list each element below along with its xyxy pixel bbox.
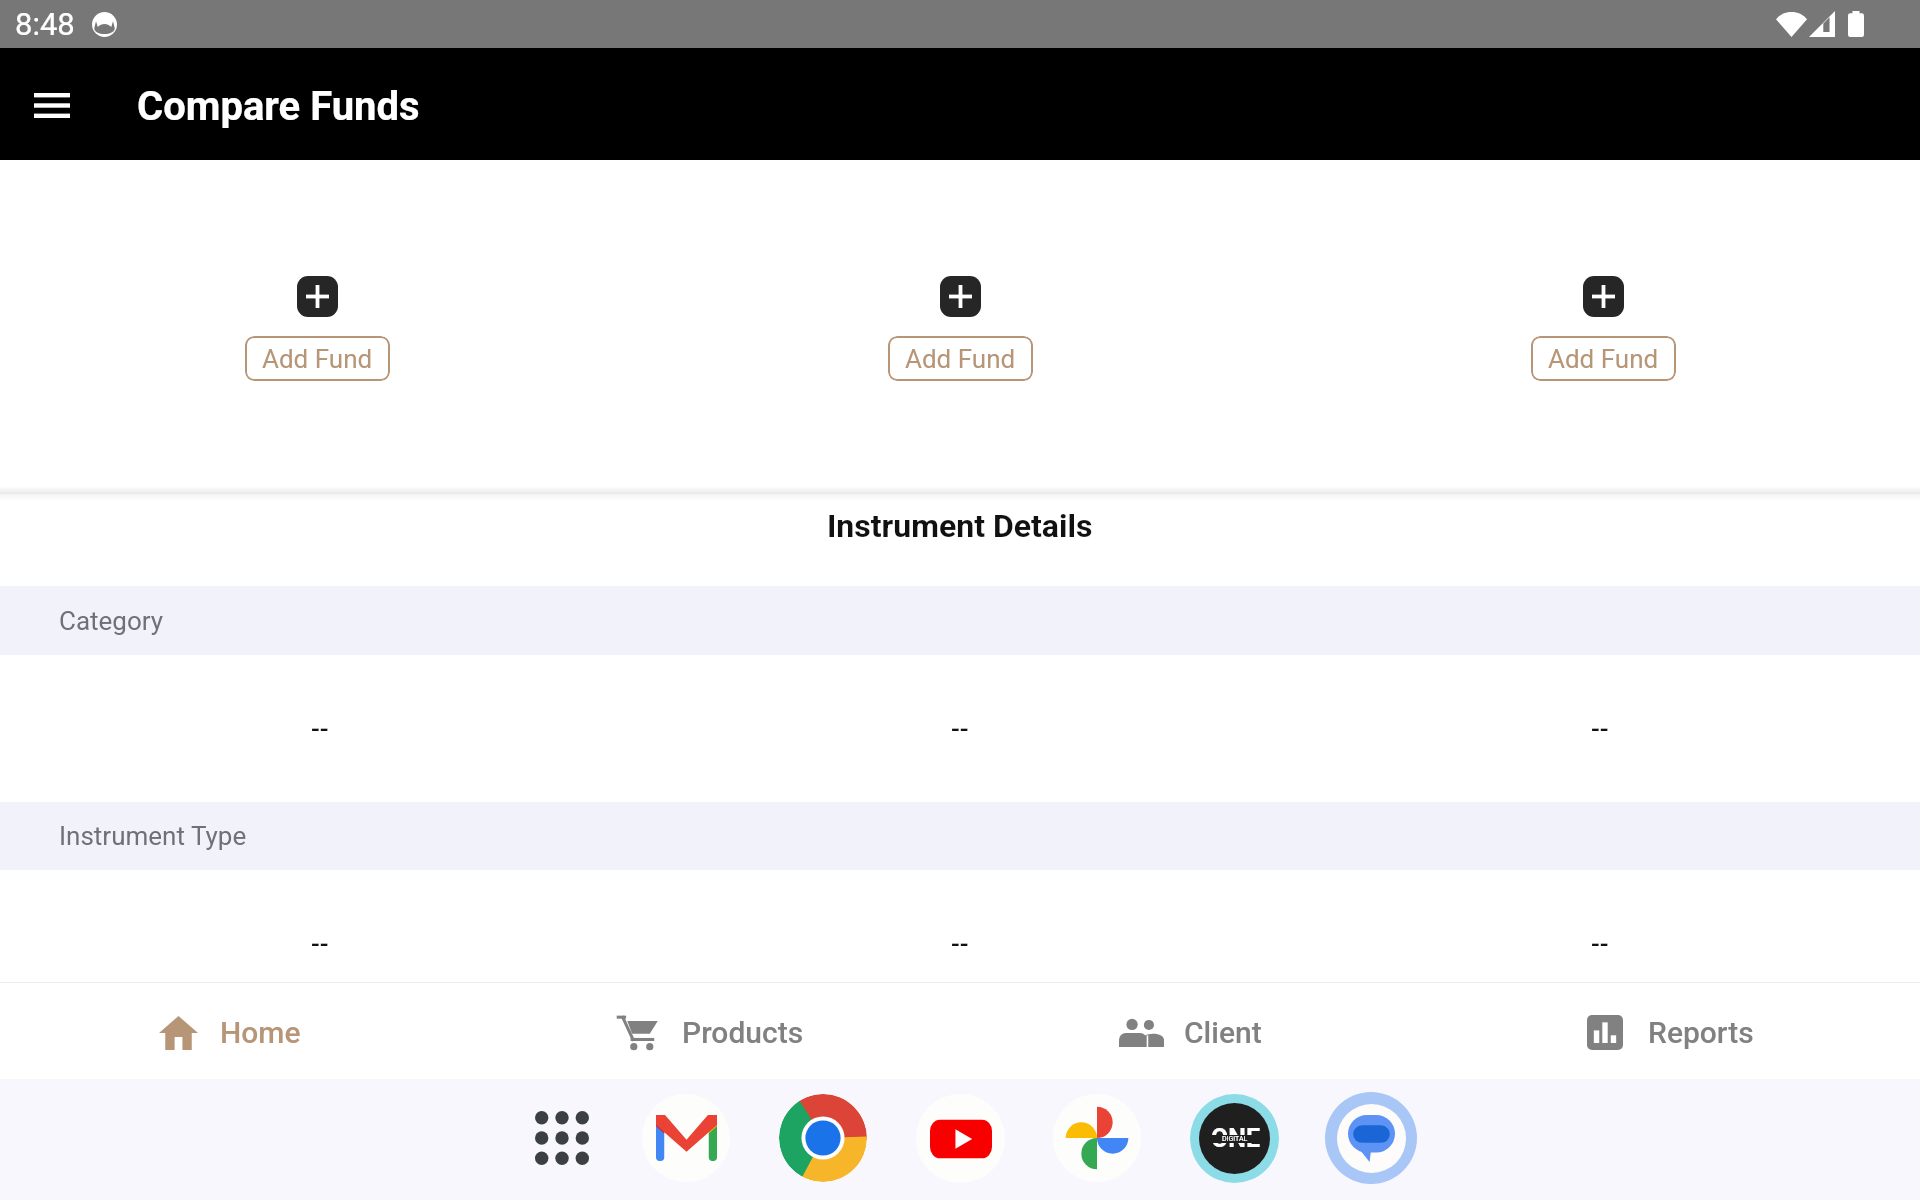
staticText: Category: [59, 606, 164, 636]
staticText: --: [951, 714, 969, 744]
button[interactable]: Add fund: [1583, 276, 1624, 317]
button[interactable]: Reports: [1440, 983, 1920, 1079]
staticText: Add Fund: [262, 344, 373, 374]
button[interactable]: Google Photos: [1053, 1094, 1141, 1182]
staticText: Products: [682, 1015, 804, 1050]
button[interactable]: Gmail: [642, 1094, 730, 1182]
button[interactable]: Add fund: [297, 276, 338, 317]
staticText: --: [1591, 929, 1609, 959]
button[interactable]: Chrome: [779, 1094, 867, 1182]
button[interactable]: All apps: [518, 1094, 606, 1182]
staticText: ONE: [1211, 1124, 1260, 1153]
button[interactable]: One Digital: [1190, 1094, 1279, 1183]
staticText: --: [1591, 714, 1609, 744]
staticText: Instrument Type: [59, 821, 247, 851]
staticText: Add Fund: [1548, 344, 1659, 374]
button[interactable]: Add Fund: [245, 336, 390, 381]
staticText: --: [951, 929, 969, 959]
button[interactable]: Products: [480, 983, 960, 1079]
button[interactable]: Add Fund: [1531, 336, 1676, 381]
staticText: Reports: [1648, 1015, 1754, 1050]
staticText: Home: [220, 1015, 301, 1050]
button[interactable]: Open navigation menu: [16, 68, 88, 140]
staticText: Client: [1184, 1015, 1262, 1050]
button[interactable]: Home: [0, 983, 480, 1079]
staticText: Instrument Details: [827, 507, 1093, 545]
staticText: DIGITAL: [1222, 1135, 1248, 1143]
staticText: Compare Funds: [137, 83, 420, 130]
button[interactable]: YouTube: [916, 1094, 1005, 1183]
button[interactable]: Add fund: [940, 276, 981, 317]
staticText: --: [311, 929, 329, 959]
button[interactable]: Messages: [1325, 1092, 1417, 1184]
button[interactable]: Client: [960, 983, 1440, 1079]
staticText: 8:48: [15, 6, 75, 42]
staticText: --: [311, 714, 329, 744]
staticText: Add Fund: [905, 344, 1016, 374]
button[interactable]: Add Fund: [888, 336, 1033, 381]
